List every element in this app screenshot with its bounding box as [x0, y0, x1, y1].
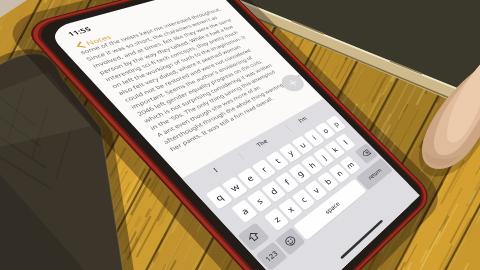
button[interactable]: Phone with the Notes app open on a woode… [0, 0, 480, 270]
